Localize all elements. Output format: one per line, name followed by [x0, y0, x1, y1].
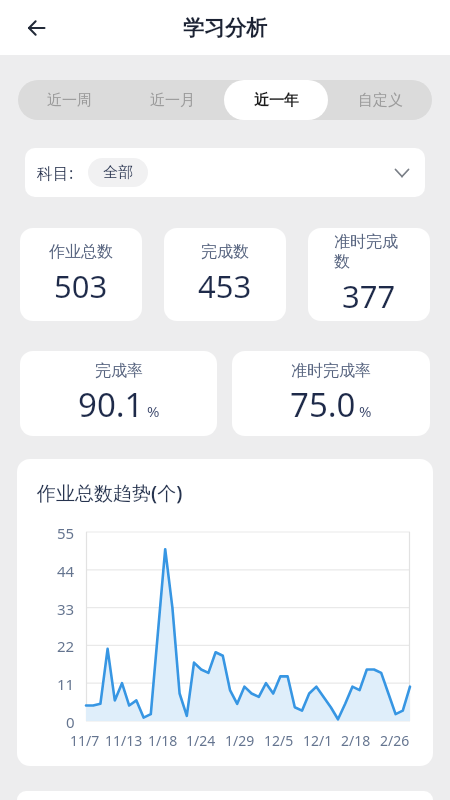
- button[interactable]: 准时完成率: [232, 351, 430, 436]
- staticText: %: [359, 401, 372, 421]
- staticText: 作业总数趋势(个): [37, 480, 183, 506]
- staticText: 2/26: [380, 731, 410, 750]
- staticText: 近一月: [150, 91, 195, 110]
- button[interactable]: 完成率: [20, 351, 217, 436]
- button[interactable]: [21, 13, 51, 43]
- staticText: 22: [57, 636, 75, 656]
- button[interactable]: 近一年: [224, 80, 328, 120]
- button[interactable]: 完成数: [164, 228, 286, 321]
- button[interactable]: 自定义: [328, 80, 432, 120]
- staticText: 55: [57, 523, 75, 543]
- staticText: 11: [57, 674, 75, 694]
- staticText: 503: [54, 265, 108, 307]
- staticText: 2/18: [341, 731, 371, 750]
- staticText: 科目:: [37, 162, 74, 184]
- staticText: 自定义: [358, 91, 403, 110]
- staticText: 0: [66, 712, 75, 732]
- staticText: 44: [57, 561, 75, 581]
- button[interactable]: 作业总数: [20, 228, 142, 321]
- staticText: 11/7: [70, 731, 100, 750]
- staticText: 全部: [103, 163, 133, 182]
- staticText: 作业总数: [49, 242, 113, 262]
- staticText: 11/13: [105, 731, 143, 750]
- staticText: 1/29: [225, 731, 255, 750]
- staticText: 1/18: [148, 731, 178, 750]
- staticText: 学习分析: [183, 15, 267, 41]
- staticText: 90.1: [78, 382, 144, 427]
- staticText: 近一周: [47, 91, 92, 110]
- staticText: 453: [198, 265, 252, 307]
- staticText: 完成数: [201, 242, 249, 262]
- button[interactable]: 准时完成数: [308, 228, 430, 321]
- staticText: 12/5: [264, 731, 294, 750]
- button[interactable]: 近一周: [18, 80, 121, 120]
- staticText: 377: [342, 275, 396, 317]
- button[interactable]: 科目:: [25, 148, 425, 197]
- staticText: 12/1: [303, 731, 333, 750]
- button[interactable]: 近一月: [121, 80, 224, 120]
- staticText: 1/24: [186, 731, 216, 750]
- staticText: 33: [57, 599, 75, 619]
- staticText: 完成率: [95, 361, 143, 381]
- staticText: %: [147, 401, 160, 421]
- staticText: 准时完成率: [291, 361, 371, 381]
- staticText: 75.0: [290, 382, 356, 427]
- staticText: 近一年: [254, 91, 299, 110]
- staticText: 准时完成数: [334, 232, 404, 272]
